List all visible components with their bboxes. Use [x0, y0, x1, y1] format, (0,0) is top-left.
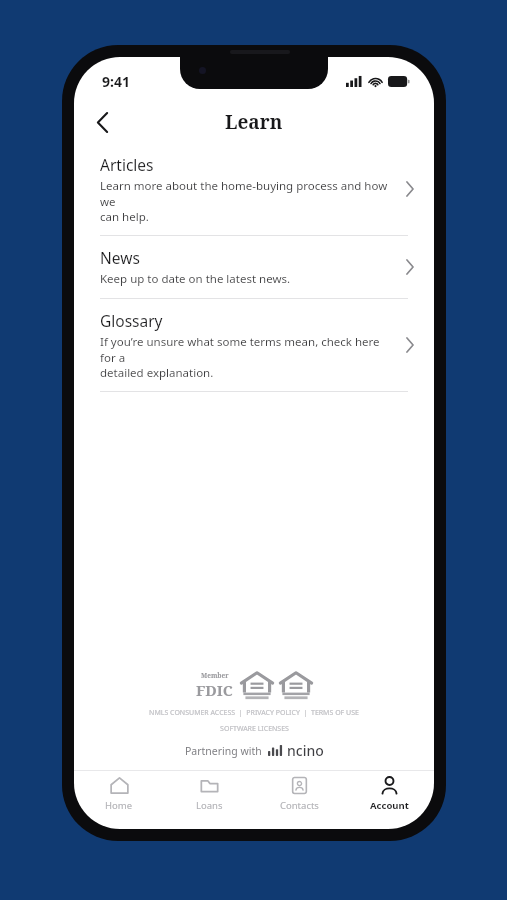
button[interactable]: NMLS CONSUMER ACCESS | PRIVACY POLICY | …: [149, 708, 359, 718]
staticText: If you’re unsure what some terms mean, c…: [100, 334, 398, 380]
staticText: Loans: [196, 799, 223, 812]
staticText: Keep up to date on the latest news.: [100, 271, 291, 287]
staticText: Partnering with: [185, 744, 262, 758]
button[interactable]: Home: [74, 771, 164, 817]
staticText: Learn: [225, 109, 283, 135]
button[interactable]: Back: [80, 101, 124, 143]
staticText: Member: [201, 671, 229, 680]
staticText: FDIC: [196, 680, 233, 700]
button[interactable]: Account: [344, 771, 434, 817]
staticText: News: [100, 247, 140, 268]
staticText: 9:41: [102, 72, 130, 91]
staticText: Account: [370, 799, 409, 812]
button[interactable]: SOFTWARE LICENSES: [220, 724, 289, 734]
staticText: ncino: [287, 741, 324, 760]
button[interactable]: Articles: [74, 143, 434, 235]
staticText: Glossary: [100, 310, 163, 331]
staticText: Home: [105, 799, 133, 812]
button[interactable]: Loans: [164, 771, 254, 817]
staticText: Contacts: [280, 799, 319, 812]
staticText: Learn more about the home-buying process…: [100, 178, 398, 224]
staticText: Articles: [100, 154, 154, 175]
button[interactable]: Glossary: [74, 299, 434, 391]
button[interactable]: News: [74, 236, 434, 298]
button[interactable]: Contacts: [254, 771, 344, 817]
